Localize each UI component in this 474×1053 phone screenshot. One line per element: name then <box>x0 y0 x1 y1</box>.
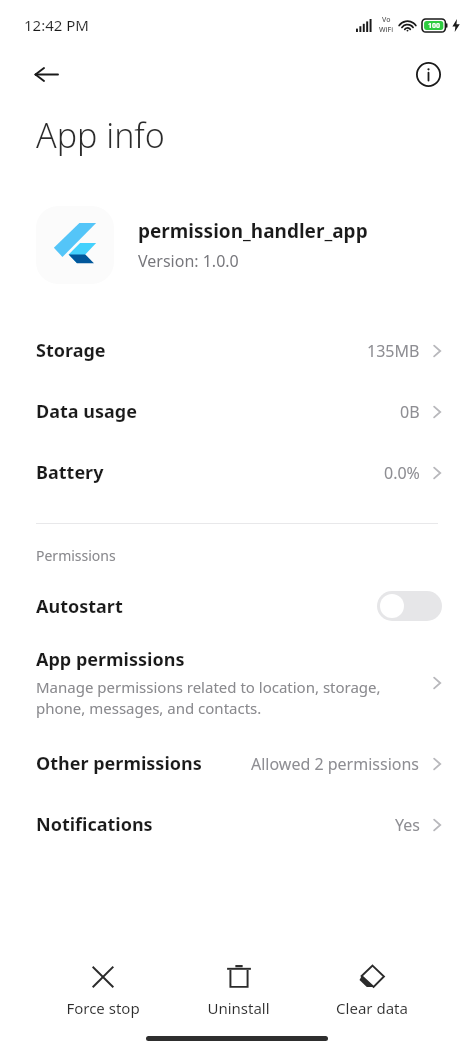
staticText: Notifications <box>36 812 153 837</box>
staticText: App info <box>36 112 165 158</box>
staticText: 135MB <box>367 340 420 362</box>
staticText: Autostart <box>36 594 123 619</box>
staticText: Battery <box>36 460 104 485</box>
button[interactable]: Clear data <box>330 960 414 1022</box>
button[interactable]: Storage <box>0 320 474 381</box>
button[interactable]: Back <box>24 52 68 96</box>
button[interactable]: Data usage <box>0 381 474 442</box>
staticText: Manage permissions related to location, … <box>36 677 414 719</box>
button[interactable]: App permissions <box>0 633 474 733</box>
staticText: Allowed 2 permissions <box>251 753 420 775</box>
button[interactable]: Battery <box>0 442 474 503</box>
staticText: Version: 1.0.0 <box>138 250 239 272</box>
button[interactable]: Uninstall <box>201 960 276 1022</box>
staticText: Other permissions <box>36 751 202 776</box>
staticText: Vo <box>382 15 391 25</box>
staticText: 0B <box>400 401 420 423</box>
staticText: Storage <box>36 338 106 363</box>
staticText: Uninstall <box>207 998 270 1018</box>
button[interactable]: Notifications <box>0 794 474 855</box>
staticText: Clear data <box>336 998 408 1018</box>
staticText: Data usage <box>36 399 137 424</box>
staticText: 12:42 PM <box>24 15 89 35</box>
staticText: App permissions <box>36 647 185 672</box>
button[interactable]: App details <box>406 52 450 96</box>
staticText: permission_handler_app <box>138 218 368 244</box>
button[interactable]: Other permissions <box>0 733 474 794</box>
staticText: Force stop <box>66 998 140 1018</box>
button[interactable]: Force stop <box>60 960 146 1022</box>
staticText: Yes <box>395 814 420 836</box>
staticText: 100 <box>428 21 441 31</box>
staticText: Permissions <box>36 546 116 565</box>
staticText: 0.0% <box>384 462 420 484</box>
button[interactable]: Autostart <box>0 579 474 633</box>
staticText: WiFi <box>379 25 394 35</box>
